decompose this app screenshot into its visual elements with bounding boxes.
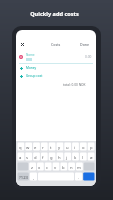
staticText: d xyxy=(34,155,37,161)
button[interactable]: i xyxy=(71,143,79,153)
staticText: i xyxy=(74,145,76,151)
staticText: Money xyxy=(26,66,37,70)
button[interactable]: s xyxy=(24,153,31,163)
staticText: u xyxy=(66,145,69,151)
button[interactable]: q xyxy=(17,143,24,153)
button[interactable]: w xyxy=(24,143,31,153)
staticText: c xyxy=(46,165,49,171)
staticText: l xyxy=(82,155,84,161)
staticText: b xyxy=(62,165,65,171)
staticText: s xyxy=(26,155,29,161)
button[interactable]: Money xyxy=(19,64,96,72)
button[interactable]: e xyxy=(31,143,39,153)
staticText: f xyxy=(42,155,44,161)
staticText: e xyxy=(34,145,37,151)
staticText: , xyxy=(33,175,35,181)
staticText: y xyxy=(58,145,61,151)
button[interactable]: v xyxy=(51,163,59,173)
button[interactable]: Group cost xyxy=(19,72,96,80)
staticText: t xyxy=(50,145,52,151)
staticText: . xyxy=(78,175,80,181)
button[interactable]: . xyxy=(75,173,83,183)
button[interactable]: key xyxy=(83,173,95,183)
button[interactable]: k xyxy=(71,153,79,163)
staticText: g xyxy=(50,155,53,161)
staticText: x xyxy=(38,165,41,171)
staticText: z xyxy=(31,165,33,171)
button[interactable]: key xyxy=(17,163,28,173)
button[interactable]: f xyxy=(39,153,47,163)
staticText: k xyxy=(74,155,77,161)
button[interactable]: a xyxy=(17,153,24,163)
staticText: p xyxy=(90,145,93,151)
button[interactable]: Close xyxy=(18,40,26,48)
staticText: total: 0.00 NOK xyxy=(63,83,86,87)
button[interactable]: c xyxy=(43,163,51,173)
staticText: m xyxy=(77,165,81,171)
staticText: a xyxy=(19,155,22,161)
button[interactable]: ø xyxy=(87,153,95,163)
button[interactable]: m xyxy=(75,163,83,173)
button[interactable]: l xyxy=(79,153,87,163)
button[interactable]: n xyxy=(67,163,75,173)
button[interactable]: Costs xyxy=(51,42,61,47)
button[interactable]: r xyxy=(39,143,47,153)
button[interactable]: j xyxy=(63,153,71,163)
staticText: j xyxy=(66,155,68,161)
staticText: o xyxy=(82,145,85,151)
staticText: r xyxy=(42,145,44,151)
staticText: 0.00 xyxy=(85,55,92,59)
button[interactable]: h xyxy=(55,153,63,163)
staticText: ø xyxy=(90,155,93,161)
button[interactable]: t xyxy=(47,143,55,153)
button[interactable]: p xyxy=(87,143,95,153)
button[interactable]: key xyxy=(38,173,75,183)
button[interactable]: u xyxy=(63,143,71,153)
staticText: q xyxy=(19,145,22,151)
staticText: h xyxy=(58,155,61,161)
button[interactable]: ?123 xyxy=(17,173,30,183)
button[interactable]: d xyxy=(31,153,39,163)
staticText: Group cost xyxy=(26,74,43,78)
staticText: Name xyxy=(26,53,35,57)
staticText: ?123 xyxy=(19,175,29,181)
button[interactable]: b xyxy=(59,163,67,173)
button[interactable]: Done xyxy=(80,42,90,47)
staticText: w xyxy=(26,145,30,151)
staticText: Quickly add costs xyxy=(30,10,79,18)
button[interactable]: x xyxy=(35,163,43,173)
button[interactable]: z xyxy=(28,163,35,173)
button[interactable]: key xyxy=(83,163,95,173)
staticText: v xyxy=(54,165,57,171)
button[interactable]: g xyxy=(47,153,55,163)
button[interactable]: , xyxy=(30,173,38,183)
button[interactable]: Remove cost xyxy=(19,55,23,59)
staticText: n xyxy=(70,165,73,171)
button[interactable]: o xyxy=(79,143,87,153)
button[interactable]: y xyxy=(55,143,63,153)
